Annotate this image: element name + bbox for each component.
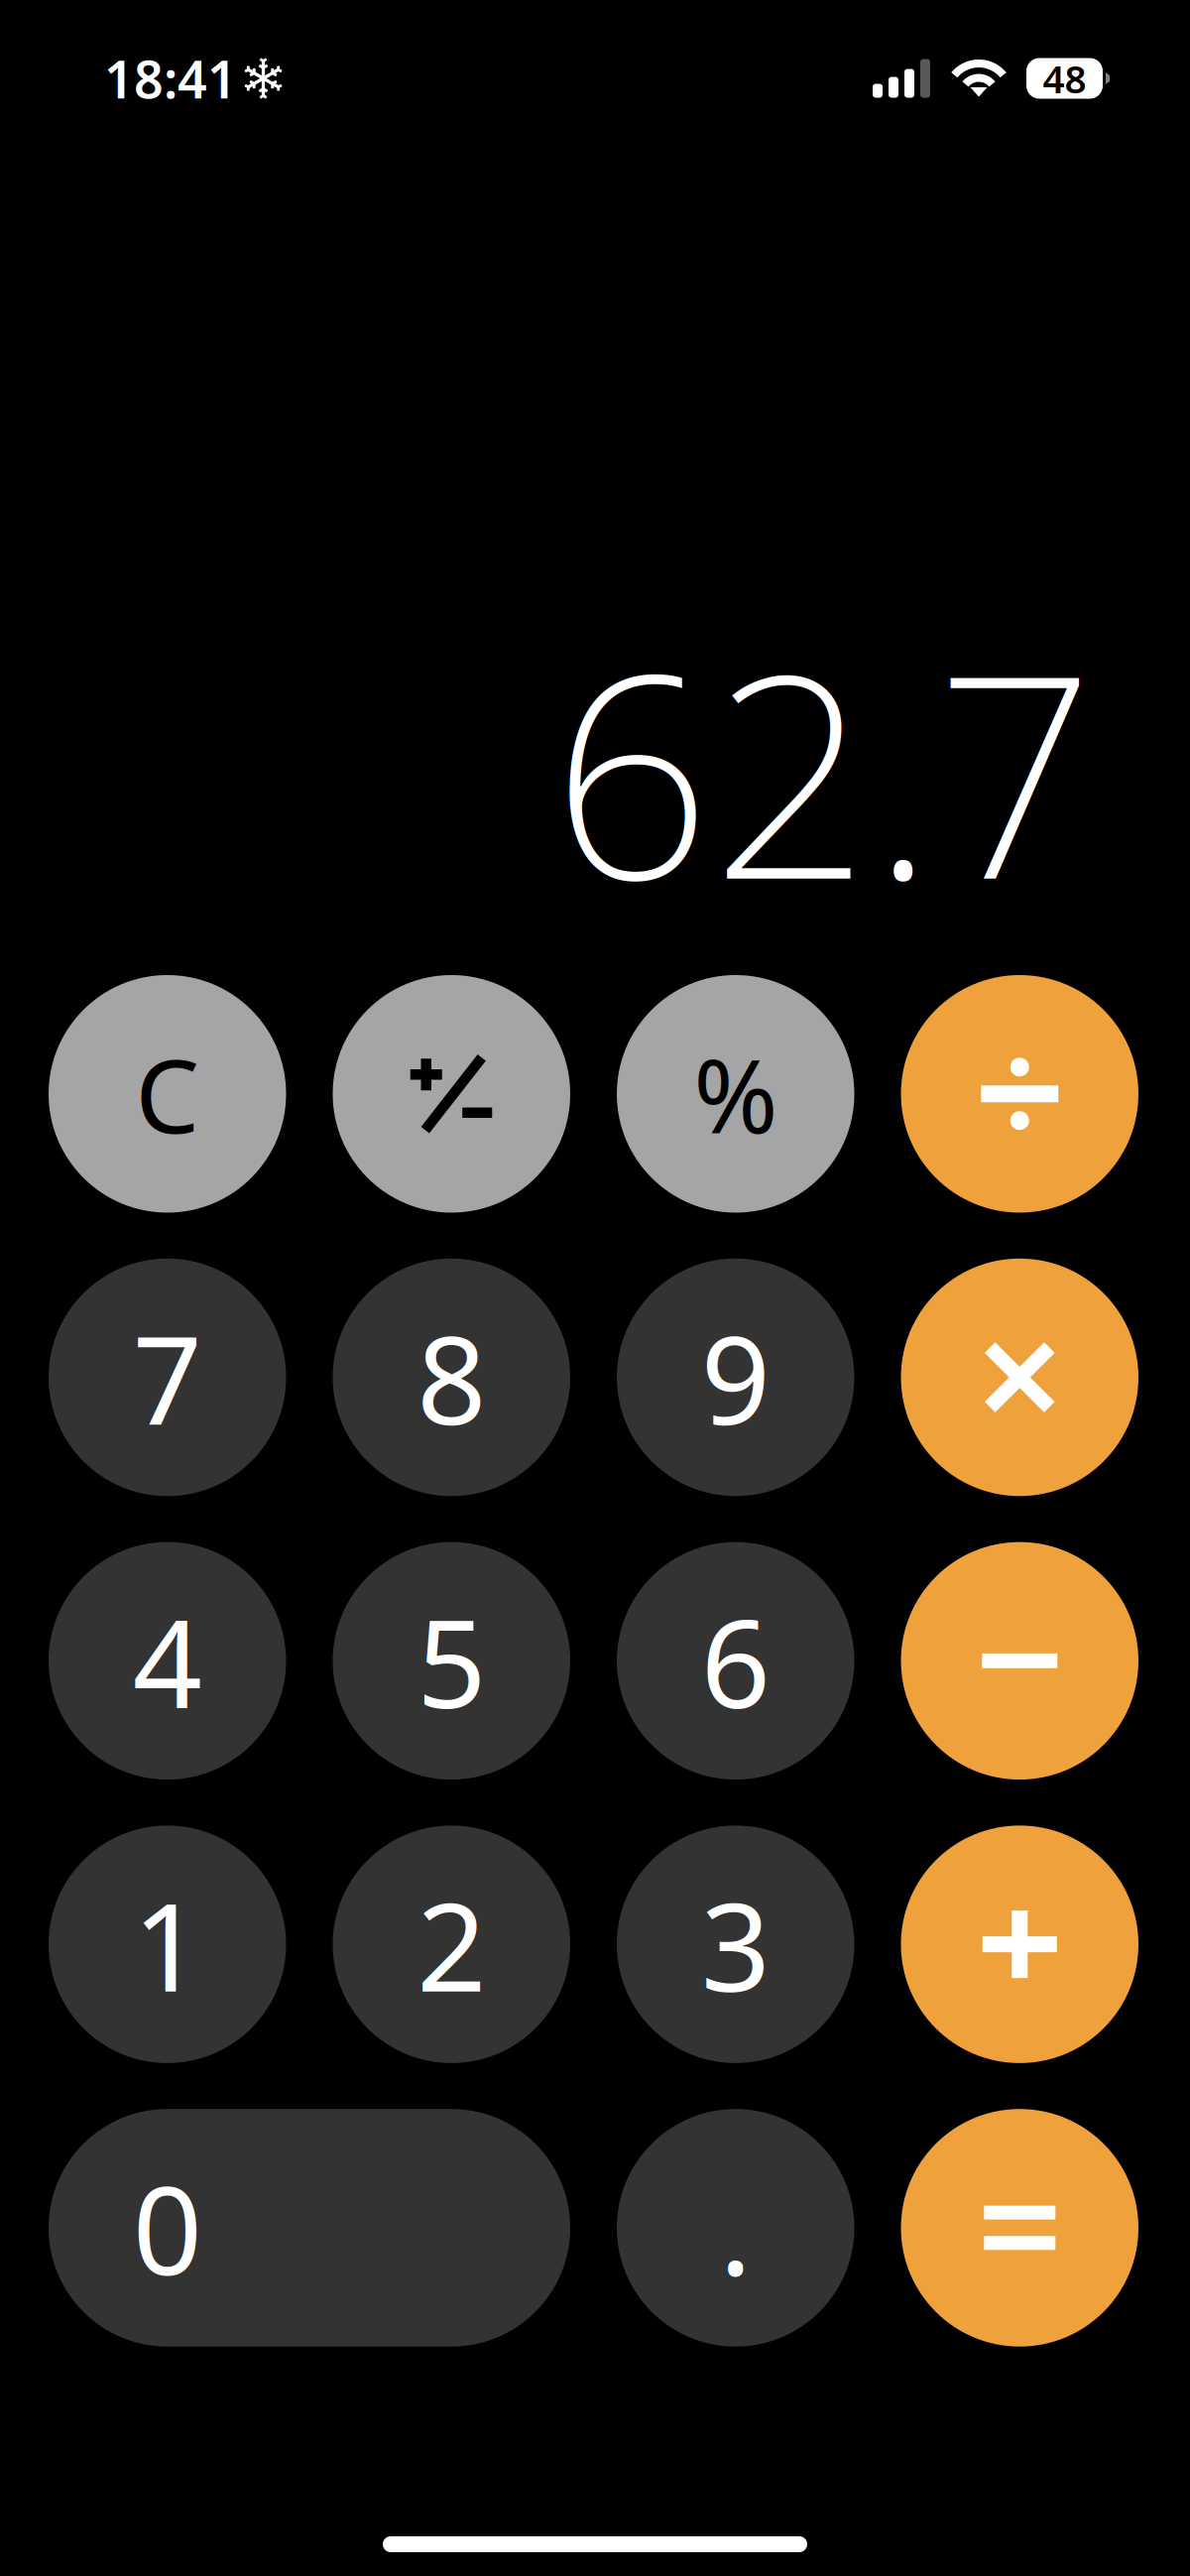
staticText: 9 bbox=[701, 1297, 770, 1458]
button[interactable]: 3 bbox=[617, 1826, 854, 2063]
button[interactable]: Multiply bbox=[901, 1259, 1138, 1496]
staticText: 6 bbox=[701, 1580, 770, 1742]
staticText: 48 bbox=[1043, 53, 1086, 104]
button[interactable]: 2 bbox=[333, 1826, 570, 2063]
button[interactable]: % bbox=[617, 975, 854, 1213]
button[interactable]: 9 bbox=[617, 1259, 854, 1496]
staticText: 7 bbox=[133, 1297, 202, 1458]
staticText: 62.7 bbox=[551, 584, 1095, 956]
staticText: . bbox=[719, 2147, 752, 2309]
staticText: 2 bbox=[417, 1864, 486, 2025]
staticText: % bbox=[693, 1026, 778, 1161]
button[interactable]: Add bbox=[901, 1826, 1138, 2063]
button[interactable]: Divide bbox=[901, 975, 1138, 1213]
staticText: 1 bbox=[133, 1864, 202, 2025]
button[interactable]: Subtract bbox=[901, 1542, 1138, 1780]
button[interactable]: . bbox=[617, 2109, 854, 2347]
button[interactable]: 7 bbox=[49, 1259, 286, 1496]
button[interactable]: Equals bbox=[901, 2109, 1138, 2347]
staticText: 0 bbox=[133, 2147, 202, 2309]
button[interactable]: 4 bbox=[49, 1542, 286, 1780]
button[interactable]: 5 bbox=[333, 1542, 570, 1780]
button[interactable]: 6 bbox=[617, 1542, 854, 1780]
button[interactable]: 0 bbox=[49, 2109, 570, 2347]
button[interactable]: 1 bbox=[49, 1826, 286, 2063]
button[interactable]: 8 bbox=[333, 1259, 570, 1496]
staticText: 8 bbox=[417, 1297, 486, 1458]
staticText: C bbox=[135, 1026, 200, 1161]
staticText: 18:41 bbox=[104, 44, 237, 113]
staticText: 4 bbox=[133, 1580, 202, 1742]
button[interactable]: Toggle sign bbox=[333, 975, 570, 1213]
staticText: 3 bbox=[701, 1864, 770, 2025]
button[interactable]: C bbox=[49, 975, 286, 1213]
staticText: 5 bbox=[417, 1580, 486, 1742]
